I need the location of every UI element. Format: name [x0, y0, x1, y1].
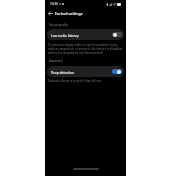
staticText: Earbud settings [55, 11, 83, 16]
staticText: Sound quality [49, 23, 68, 27]
button[interactable]: Toggle on [112, 69, 122, 74]
button[interactable]: Back [45, 9, 55, 18]
staticText: Drop detection [51, 70, 75, 74]
staticText: Advanced [49, 59, 63, 63]
staticText: Low audio latency [51, 33, 79, 37]
button[interactable]: Low audio latency [47, 29, 124, 40]
staticText: Earbuds vibrate a sound if they fall out [48, 79, 102, 83]
staticText: 10:36 [50, 2, 58, 6]
button[interactable]: Toggle off [112, 32, 122, 37]
button[interactable]: Drop detection [47, 66, 124, 77]
staticText: To prevent choppy audio or synchronizati… [48, 43, 122, 55]
